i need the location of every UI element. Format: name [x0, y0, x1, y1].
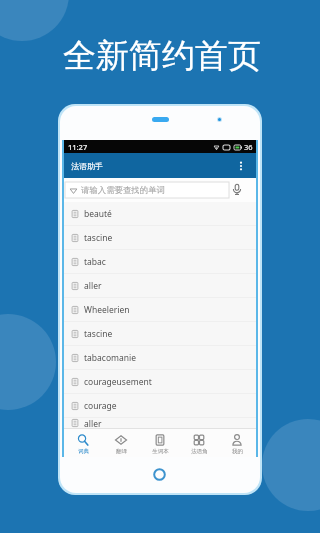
button[interactable]: More options: [234, 159, 248, 173]
staticText: aller: [84, 418, 102, 428]
staticText: 11:27: [68, 142, 88, 152]
button[interactable]: Home: [153, 468, 166, 481]
staticText: aller: [84, 280, 102, 292]
button[interactable]: 词典: [65, 429, 101, 457]
button[interactable]: Voice search: [232, 183, 242, 196]
staticText: Wheelerien: [84, 304, 130, 316]
button[interactable]: aller: [62, 274, 258, 297]
staticText: 请输入需要查找的单词: [81, 185, 165, 196]
staticText: 生词本: [152, 448, 169, 455]
button[interactable]: 翻译: [103, 429, 139, 457]
button[interactable]: beauté: [62, 202, 258, 225]
button[interactable]: Wheelerien: [62, 298, 258, 321]
staticText: tascine: [84, 232, 113, 244]
button[interactable]: tascine: [62, 322, 258, 345]
staticText: 36: [244, 142, 253, 152]
staticText: tascine: [84, 328, 113, 340]
staticText: tabac: [84, 256, 106, 268]
staticText: tabacomanie: [84, 352, 137, 364]
staticText: beauté: [84, 208, 112, 220]
staticText: courage: [84, 400, 117, 412]
button[interactable]: tascine: [62, 226, 258, 249]
button[interactable]: aller: [62, 418, 258, 428]
button[interactable]: courageusement: [62, 370, 258, 393]
staticText: 词典: [78, 448, 89, 455]
button[interactable]: tabac: [62, 250, 258, 273]
button[interactable]: 法语角: [181, 429, 217, 457]
staticText: 法语助手: [71, 161, 103, 171]
staticText: 我的: [232, 448, 243, 455]
button[interactable]: 生词本: [142, 429, 178, 457]
button[interactable]: tabacomanie: [62, 346, 258, 369]
staticText: 法语角: [191, 448, 208, 455]
button[interactable]: 我的: [219, 429, 255, 457]
staticText: 翻译: [116, 448, 127, 455]
button[interactable]: 请输入需要查找的单词: [65, 182, 229, 198]
staticText: courageusement: [84, 376, 152, 388]
button[interactable]: courage: [62, 394, 258, 417]
staticText: 全新简约首页: [63, 35, 261, 77]
